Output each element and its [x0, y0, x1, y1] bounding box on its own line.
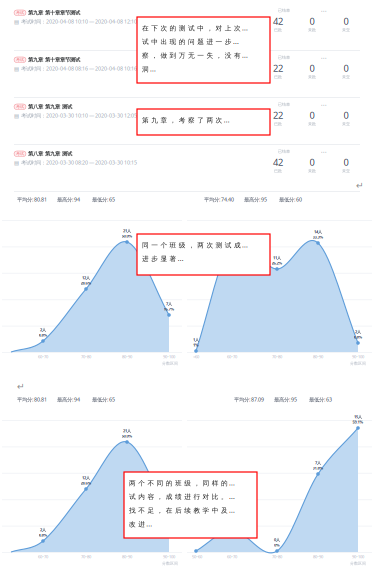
- staticText: 70~80: [81, 554, 91, 559]
- staticText: 90~100: [163, 354, 175, 359]
- staticText: 60~70: [38, 354, 48, 359]
- staticText: 平均分: 87.09: [234, 396, 264, 403]
- staticText: 60~70: [227, 354, 237, 359]
- button[interactable]: 考试: [14, 149, 358, 171]
- staticText: 最低分: 65: [92, 196, 115, 203]
- staticText: 未交: [342, 168, 350, 173]
- staticText: 0: [309, 156, 314, 168]
- staticText: 找不足，在后续教学中及时: [129, 506, 237, 514]
- staticText: 考试: [16, 57, 24, 62]
- staticText: 59.1%: [352, 419, 363, 425]
- staticText: 0%: [274, 542, 280, 548]
- staticText: 70~80: [272, 554, 282, 559]
- staticText: 最高分: 94: [57, 196, 80, 203]
- staticText: 第八章 第九章 测试: [28, 103, 72, 110]
- staticText: 已结束: [278, 8, 290, 13]
- staticText: 60~70: [227, 554, 237, 559]
- staticText: 已结束: [278, 102, 290, 107]
- staticText: 42: [273, 15, 283, 27]
- staticText: 70~80: [81, 354, 91, 359]
- staticText: 改进。: [129, 519, 154, 528]
- staticText: 33.3%: [312, 234, 323, 240]
- staticText: 未交: [342, 74, 350, 79]
- staticText: 最低分: 65: [92, 396, 115, 403]
- staticText: 50~60: [192, 554, 202, 559]
- staticText: 未批: [308, 121, 316, 126]
- staticText: 90~100: [352, 554, 364, 559]
- staticText: 平均分: 74.40: [204, 196, 234, 203]
- staticText: 50.0%: [121, 433, 132, 439]
- staticText: 已结束: [278, 55, 290, 60]
- staticText: 第九章 第十章章节测试: [28, 56, 80, 63]
- staticText: 11人: [273, 255, 281, 260]
- staticText: 14人: [314, 229, 322, 234]
- staticText: •••: [321, 102, 327, 108]
- button[interactable]: 考试: [14, 55, 358, 77]
- staticText: 21人: [123, 228, 131, 233]
- staticText: 12人: [82, 275, 90, 280]
- staticText: 1%: [193, 342, 199, 348]
- staticText: 分数区间: [350, 361, 366, 366]
- staticText: 试中出现的问题进一步考: [142, 37, 241, 45]
- staticText: 未批: [308, 27, 316, 32]
- staticText: 0: [309, 109, 314, 121]
- staticText: ↵: [356, 180, 364, 191]
- button[interactable]: 考试: [14, 102, 358, 124]
- staticText: 0: [309, 62, 314, 74]
- staticText: 0: [343, 15, 348, 27]
- staticText: 在下次的测试中，对上次测: [142, 23, 250, 32]
- staticText: 80~90: [313, 554, 323, 559]
- staticText: ↵: [17, 381, 25, 392]
- staticText: 0人: [274, 537, 280, 542]
- staticText: 考试: [16, 151, 24, 156]
- staticText: •••: [321, 8, 327, 14]
- staticText: 两个不同的班级，同样的测: [129, 478, 237, 487]
- staticText: 12人: [82, 475, 90, 480]
- staticText: 最高分: 94: [57, 396, 80, 403]
- staticText: 未交: [342, 121, 350, 126]
- staticText: 80~90: [122, 554, 132, 559]
- staticText: 16.7%: [163, 306, 174, 312]
- staticText: 分数区间: [162, 361, 178, 366]
- staticText: 2人: [40, 327, 46, 332]
- staticText: 60~70: [38, 554, 48, 559]
- staticText: 90~100: [163, 554, 175, 559]
- staticText: 7人: [315, 460, 321, 465]
- staticText: •••: [321, 55, 327, 61]
- staticText: 80~90: [313, 354, 323, 359]
- staticText: 考试: [16, 104, 24, 109]
- staticText: 26.2%: [271, 260, 282, 266]
- staticText: 2人: [40, 527, 46, 532]
- staticText: 平均分: 80.81: [17, 396, 47, 403]
- staticText: 最高分: 95: [244, 196, 267, 203]
- staticText: 16.7%: [163, 506, 174, 512]
- staticText: 90~100: [352, 354, 364, 359]
- staticText: 0: [343, 109, 348, 121]
- staticText: ▤ 考试时间：2020-03-30 08:20 — 2020-03-30 10:…: [14, 159, 137, 166]
- staticText: 平均分: 80.81: [17, 196, 47, 203]
- staticText: 已结束: [278, 149, 290, 154]
- staticText: 0: [343, 62, 348, 74]
- staticText: 28.6%: [80, 280, 91, 286]
- staticText: 80~90: [122, 354, 132, 359]
- staticText: ▤ 考试时间：2020-04-08 10:10 — 2020-04-08 12:…: [14, 18, 137, 25]
- staticText: <60: [193, 354, 199, 359]
- staticText: 22: [273, 62, 283, 74]
- staticText: 最高分: 95: [274, 396, 297, 403]
- staticText: 同一个班级，两次测试成绩: [142, 240, 250, 249]
- staticText: 15人: [354, 414, 362, 419]
- staticText: 4.8%: [353, 334, 362, 340]
- staticText: 已批: [274, 121, 282, 126]
- staticText: 7人: [166, 301, 172, 306]
- staticText: 察，做到万无一失，没有漏: [142, 51, 250, 59]
- staticText: 未批: [308, 74, 316, 79]
- staticText: 已批: [274, 27, 282, 32]
- button[interactable]: 考试: [14, 8, 358, 30]
- staticText: 未批: [308, 168, 316, 173]
- staticText: 试内容，成绩进行对比。查: [129, 492, 237, 500]
- staticText: 50.0%: [121, 233, 132, 239]
- staticText: 2人: [355, 329, 361, 334]
- staticText: 洞。: [142, 64, 158, 73]
- staticText: 第九章 第十章章节测试: [28, 9, 80, 16]
